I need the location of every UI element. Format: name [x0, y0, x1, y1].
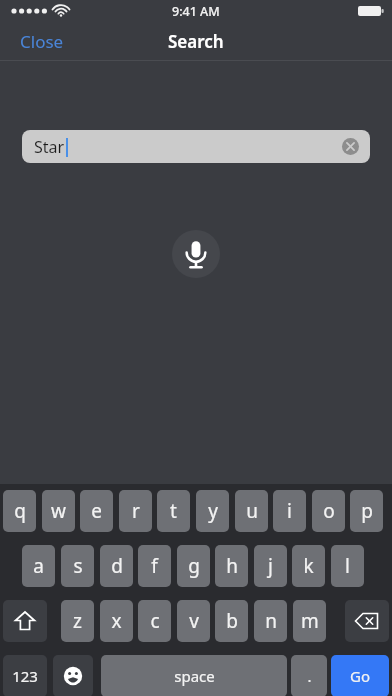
button[interactable]: e — [80, 490, 113, 532]
button[interactable]: z — [61, 600, 94, 642]
staticText: Star — [34, 136, 65, 158]
button[interactable]: 123 — [3, 655, 47, 696]
staticText: k — [303, 553, 314, 579]
staticText: x — [111, 608, 122, 634]
staticText: Close — [20, 30, 64, 53]
button[interactable]: k — [292, 545, 325, 587]
staticText: j — [268, 553, 273, 579]
button[interactable]: c — [138, 600, 171, 642]
staticText: 9:41 AM — [172, 3, 220, 20]
button[interactable]: u — [235, 490, 268, 532]
button[interactable]: f — [138, 545, 171, 587]
button[interactable]: Shift — [3, 600, 47, 642]
staticText: z — [73, 608, 82, 634]
staticText: w — [51, 498, 66, 524]
button[interactable]: a — [22, 545, 55, 587]
staticText: n — [265, 608, 277, 634]
button[interactable]: l — [331, 545, 364, 587]
button[interactable]: i — [273, 490, 306, 532]
staticText: h — [226, 553, 238, 579]
staticText: . — [307, 666, 312, 686]
button[interactable]: Backspace — [345, 600, 389, 642]
button[interactable]: g — [177, 545, 210, 587]
button[interactable]: x — [100, 600, 133, 642]
button[interactable]: p — [350, 490, 383, 532]
staticText: v — [189, 608, 199, 634]
staticText: a — [33, 553, 44, 579]
button[interactable]: Close — [0, 24, 76, 59]
staticText: m — [301, 608, 319, 634]
button[interactable]: Voice search — [172, 230, 220, 278]
staticText: i — [287, 498, 292, 524]
button[interactable]: Emoji — [53, 655, 93, 696]
staticText: f — [151, 553, 158, 579]
button[interactable]: n — [254, 600, 287, 642]
button[interactable]: j — [254, 545, 287, 587]
button[interactable]: v — [177, 600, 210, 642]
staticText: Search — [168, 30, 224, 53]
button[interactable]: y — [196, 490, 229, 532]
staticText: q — [14, 498, 26, 524]
staticText: space — [174, 666, 215, 686]
staticText: y — [208, 498, 218, 524]
button[interactable]: space — [101, 655, 287, 696]
button[interactable]: Star — [22, 130, 370, 163]
staticText: g — [188, 553, 200, 579]
button[interactable]: h — [215, 545, 248, 587]
button[interactable]: s — [61, 545, 94, 587]
staticText: e — [91, 498, 102, 524]
button[interactable]: q — [3, 490, 36, 532]
button[interactable]: t — [157, 490, 190, 532]
staticText: l — [345, 553, 350, 579]
staticText: t — [170, 498, 177, 524]
button[interactable]: r — [119, 490, 152, 532]
staticText: s — [73, 553, 83, 579]
button[interactable]: Clear text — [342, 138, 359, 155]
button[interactable]: . — [291, 655, 327, 696]
button[interactable]: b — [215, 600, 248, 642]
staticText: b — [226, 608, 238, 634]
button[interactable]: w — [42, 490, 75, 532]
button[interactable]: Go — [331, 655, 389, 696]
staticText: u — [246, 498, 258, 524]
staticText: c — [150, 608, 160, 634]
staticText: p — [361, 498, 373, 524]
button[interactable]: d — [100, 545, 133, 587]
staticText: d — [111, 553, 123, 579]
button[interactable]: o — [312, 490, 345, 532]
staticText: 123 — [12, 666, 38, 686]
button[interactable]: m — [293, 600, 326, 642]
staticText: Go — [350, 666, 370, 686]
staticText: o — [323, 498, 335, 524]
staticText: r — [132, 498, 140, 524]
